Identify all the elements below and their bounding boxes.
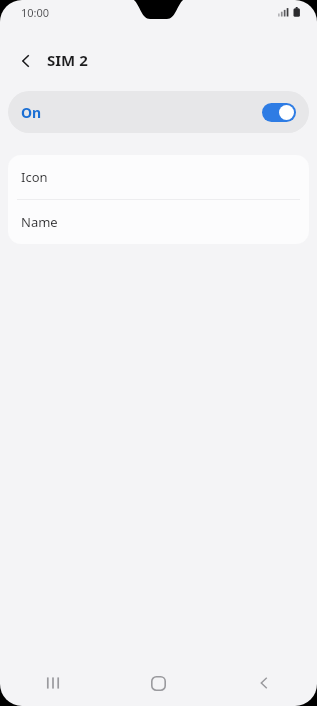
- button[interactable]: Back: [211, 660, 317, 706]
- staticText: Name: [21, 213, 58, 231]
- staticText: Icon: [21, 168, 48, 186]
- staticText: On: [21, 103, 42, 122]
- button[interactable]: Name: [8, 200, 309, 244]
- button[interactable]: Back: [10, 45, 42, 77]
- staticText: SIM 2: [47, 50, 88, 70]
- button[interactable]: Icon: [8, 155, 309, 199]
- staticText: 10:00: [21, 5, 50, 20]
- button[interactable]: Recent apps: [0, 660, 105, 706]
- button[interactable]: Home: [105, 660, 211, 706]
- button[interactable]: On: [8, 91, 309, 133]
